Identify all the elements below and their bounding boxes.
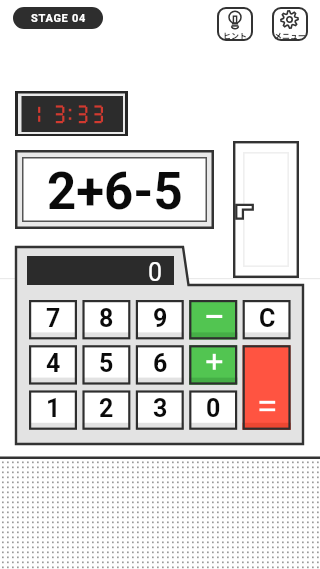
button[interactable]: C: [243, 300, 291, 339]
staticText: 0: [27, 258, 162, 287]
button[interactable]: 3: [136, 390, 184, 429]
button[interactable]: Minus: [189, 300, 237, 339]
staticText: 2: [99, 394, 114, 423]
staticText: 4: [46, 349, 61, 378]
staticText: 5: [99, 349, 114, 378]
button[interactable]: 6: [136, 345, 184, 384]
staticText: STAGE 04: [31, 12, 86, 25]
staticText: 0: [206, 394, 221, 423]
staticText: 9: [153, 304, 168, 333]
button[interactable]: 9: [136, 300, 184, 339]
button[interactable]: 4: [29, 345, 77, 384]
staticText: ヒント: [217, 30, 253, 44]
button[interactable]: Plus: [189, 345, 237, 384]
staticText: 7: [46, 304, 61, 333]
staticText: メニュー: [272, 30, 308, 44]
button[interactable]: Hint: [217, 7, 253, 41]
button[interactable]: STAGE 04: [13, 7, 103, 29]
button[interactable]: Door: [233, 141, 299, 278]
button[interactable]: 8: [82, 300, 130, 339]
button[interactable]: Equals: [243, 345, 291, 430]
staticText: 8: [99, 304, 114, 333]
button[interactable]: 7: [29, 300, 77, 339]
button[interactable]: Menu: [272, 7, 308, 41]
button[interactable]: 5: [82, 345, 130, 384]
staticText: 3: [153, 394, 168, 423]
staticText: 2+6-5: [47, 162, 183, 222]
button[interactable]: 1: [29, 390, 77, 429]
staticText: C: [259, 304, 276, 333]
button[interactable]: 2: [82, 390, 130, 429]
button[interactable]: 0: [189, 390, 237, 429]
staticText: 1: [46, 394, 61, 423]
staticText: 6: [153, 349, 168, 378]
